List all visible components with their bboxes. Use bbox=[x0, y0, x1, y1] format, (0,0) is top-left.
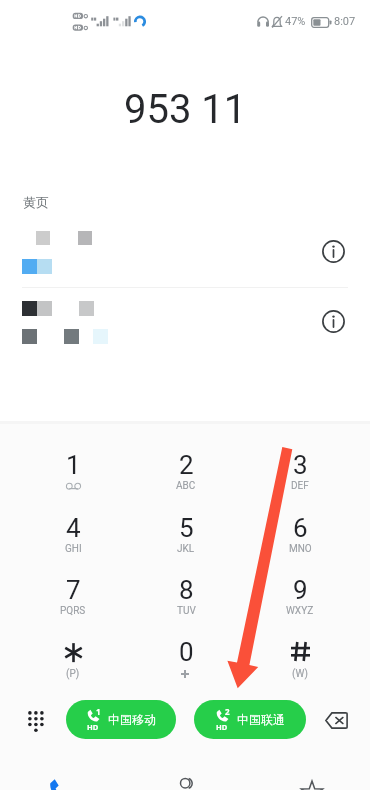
button[interactable] bbox=[139, 506, 233, 562]
staticText: 1 bbox=[96, 706, 101, 717]
button[interactable]: Info bbox=[319, 237, 347, 265]
staticText: 黄页 bbox=[23, 194, 49, 210]
button[interactable]: 2 bbox=[194, 700, 306, 739]
button[interactable]: Info bbox=[0, 288, 370, 358]
staticText: 6 bbox=[293, 513, 308, 543]
staticText: ABC bbox=[176, 480, 196, 492]
staticText: 9 bbox=[293, 575, 308, 605]
button[interactable]: Favorites bbox=[281, 760, 343, 790]
staticText: JKL bbox=[177, 543, 195, 555]
button[interactable] bbox=[253, 443, 347, 499]
button[interactable] bbox=[26, 443, 120, 499]
staticText: 1 bbox=[66, 450, 81, 480]
button[interactable]: 1 bbox=[66, 700, 176, 739]
button[interactable] bbox=[139, 630, 233, 686]
staticText: 7 bbox=[66, 575, 81, 605]
button[interactable]: Keypad bbox=[21, 705, 51, 735]
staticText: 47% bbox=[285, 15, 306, 28]
staticText: GHI bbox=[65, 543, 82, 555]
button[interactable] bbox=[26, 630, 120, 686]
staticText: 8:07 bbox=[334, 15, 356, 28]
button[interactable] bbox=[26, 568, 120, 624]
button[interactable] bbox=[139, 568, 233, 624]
staticText: HD bbox=[216, 722, 228, 732]
staticText: WXYZ bbox=[286, 605, 314, 617]
staticText: 4 bbox=[66, 513, 81, 543]
button[interactable]: Info bbox=[319, 307, 347, 335]
button[interactable] bbox=[139, 443, 233, 499]
staticText: DEF bbox=[291, 480, 309, 492]
button[interactable] bbox=[26, 506, 120, 562]
staticText: PQRS bbox=[60, 605, 86, 617]
button[interactable] bbox=[253, 630, 347, 686]
button[interactable]: Dialer bbox=[29, 760, 91, 790]
staticText: 0 bbox=[179, 637, 194, 667]
staticText: 2 bbox=[225, 706, 230, 717]
button[interactable]: Info bbox=[0, 218, 370, 286]
staticText: MNO bbox=[289, 543, 312, 555]
button[interactable]: Contacts bbox=[155, 760, 217, 790]
staticText: 2 bbox=[179, 450, 194, 480]
staticText: (P) bbox=[66, 668, 80, 680]
button[interactable]: Backspace bbox=[320, 705, 353, 735]
staticText: 5 bbox=[179, 513, 194, 543]
staticText: 中国移动 bbox=[108, 712, 156, 727]
staticText: (W) bbox=[292, 668, 308, 680]
staticText: 8 bbox=[179, 575, 194, 605]
staticText: 3 bbox=[293, 450, 308, 480]
staticText: 中国联通 bbox=[237, 712, 285, 727]
button[interactable] bbox=[253, 506, 347, 562]
staticText: HD bbox=[87, 722, 99, 732]
staticText: 953 11 bbox=[124, 86, 247, 133]
button[interactable] bbox=[253, 568, 347, 624]
staticText: TUV bbox=[177, 605, 196, 617]
